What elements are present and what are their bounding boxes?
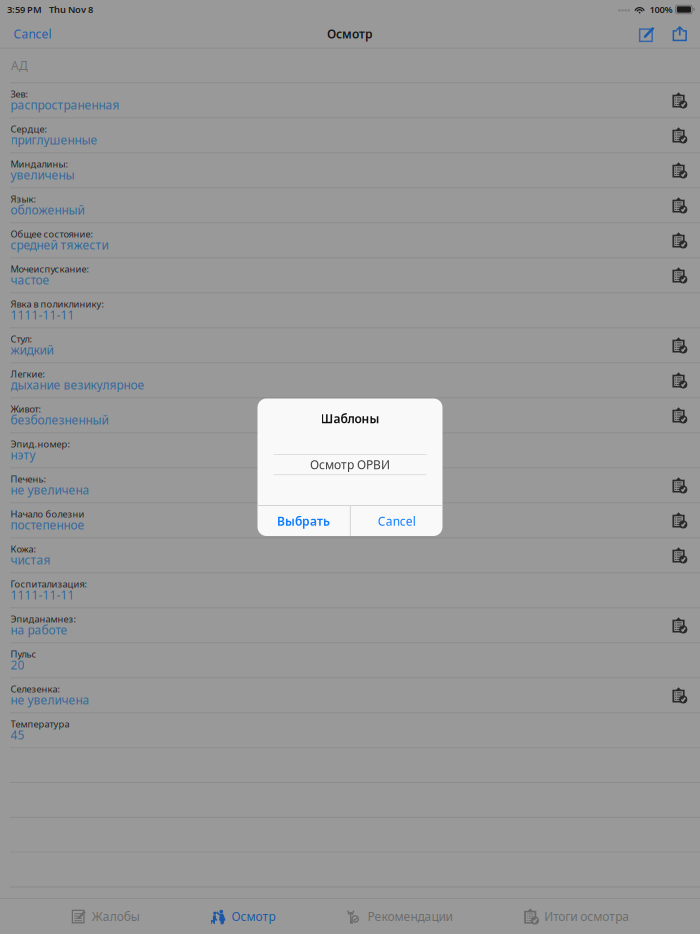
- button[interactable]: Температура: [0, 713, 700, 748]
- staticText: Температура: [10, 718, 69, 730]
- staticText: распространенная: [10, 97, 119, 113]
- button[interactable]: Осмотр: [211, 899, 276, 934]
- button[interactable]: Зев:: [0, 83, 700, 118]
- staticText: на работе: [10, 622, 67, 638]
- staticText: Пульс: [10, 648, 36, 660]
- staticText: Сердце:: [10, 123, 47, 135]
- button[interactable]: Миндалины:: [0, 153, 700, 188]
- staticText: Начало болезни: [10, 508, 84, 520]
- staticText: Селезенка:: [10, 683, 60, 695]
- staticText: безболезненный: [10, 412, 108, 428]
- staticText: Кожа:: [10, 543, 36, 555]
- staticText: Живот:: [10, 403, 41, 415]
- button[interactable]: Легкие:: [0, 363, 700, 398]
- button[interactable]: Share: [655, 20, 687, 47]
- button[interactable]: Кожа:: [0, 538, 700, 573]
- button[interactable]: Селезенка:: [0, 678, 700, 713]
- staticText: Осмотр: [327, 26, 373, 42]
- button[interactable]: Явка в поликлинику:: [0, 293, 700, 328]
- staticText: Мочеиспускание:: [10, 263, 89, 275]
- button[interactable]: Язык:: [0, 188, 700, 223]
- staticText: 45: [10, 727, 24, 743]
- staticText: 1111-11-11: [10, 307, 74, 323]
- staticText: Язык:: [10, 193, 36, 205]
- staticText: обложенный: [10, 202, 84, 218]
- staticText: 3:59 PM: [7, 3, 42, 16]
- staticText: нэту: [10, 447, 35, 463]
- staticText: увеличены: [10, 167, 74, 183]
- staticText: Миндалины:: [10, 158, 68, 170]
- staticText: не увеличена: [10, 482, 89, 498]
- button[interactable]: Cancel: [13, 20, 51, 48]
- button[interactable]: Жалобы: [71, 899, 140, 934]
- staticText: АД: [11, 57, 28, 73]
- staticText: не увеличена: [10, 692, 89, 708]
- staticText: Печень:: [10, 473, 46, 485]
- button[interactable]: Живот:: [0, 398, 700, 433]
- staticText: Cancel: [378, 513, 416, 529]
- staticText: Итоги осмотра: [544, 908, 629, 924]
- staticText: Рекомендации: [367, 908, 452, 924]
- staticText: Осмотр: [232, 908, 276, 924]
- button[interactable]: Эпиданамнез:: [0, 608, 700, 643]
- staticText: 1111-11-11: [10, 587, 74, 603]
- staticText: 100%: [650, 3, 673, 16]
- button[interactable]: Рекомендации: [346, 899, 452, 934]
- staticText: Стул:: [10, 333, 32, 345]
- staticText: приглушенные: [10, 132, 97, 148]
- staticText: чистая: [10, 552, 50, 568]
- staticText: Общее состояние:: [10, 228, 93, 240]
- staticText: Осмотр ОРВИ: [310, 457, 390, 472]
- button[interactable]: Сердце:: [0, 118, 700, 153]
- staticText: 20: [10, 657, 24, 673]
- staticText: Шаблоны: [320, 410, 379, 426]
- staticText: постепенное: [10, 517, 84, 533]
- staticText: Эпиданамнез:: [10, 613, 76, 625]
- staticText: Cancel: [13, 26, 51, 42]
- button[interactable]: Стул:: [0, 328, 700, 363]
- button[interactable]: Начало болезни: [0, 503, 700, 538]
- staticText: дыхание везикулярное: [10, 377, 144, 393]
- staticText: Thu Nov 8: [49, 3, 93, 16]
- button[interactable]: Итоги осмотра: [523, 899, 629, 934]
- button[interactable]: Печень:: [0, 468, 700, 503]
- staticText: Госпитализация:: [10, 578, 87, 590]
- button[interactable]: Мочеиспускание:: [0, 258, 700, 293]
- staticText: Выбрать: [277, 513, 330, 529]
- staticText: Легкие:: [10, 368, 45, 380]
- staticText: Явка в поликлинику:: [10, 298, 104, 310]
- staticText: Жалобы: [92, 908, 140, 924]
- button[interactable]: Общее состояние:: [0, 223, 700, 258]
- staticText: Зев:: [10, 88, 28, 100]
- staticText: Эпид.номер:: [10, 438, 70, 450]
- staticText: частое: [10, 272, 49, 288]
- button[interactable]: Compose: [639, 19, 655, 48]
- button[interactable]: Выбрать: [257, 506, 350, 536]
- button[interactable]: Госпитализация:: [0, 573, 700, 608]
- staticText: средней тяжести: [10, 237, 108, 253]
- button[interactable]: Эпид.номер:: [0, 433, 700, 468]
- staticText: жидкий: [10, 342, 53, 358]
- button[interactable]: Пульс: [0, 643, 700, 678]
- button[interactable]: Cancel: [351, 506, 443, 536]
